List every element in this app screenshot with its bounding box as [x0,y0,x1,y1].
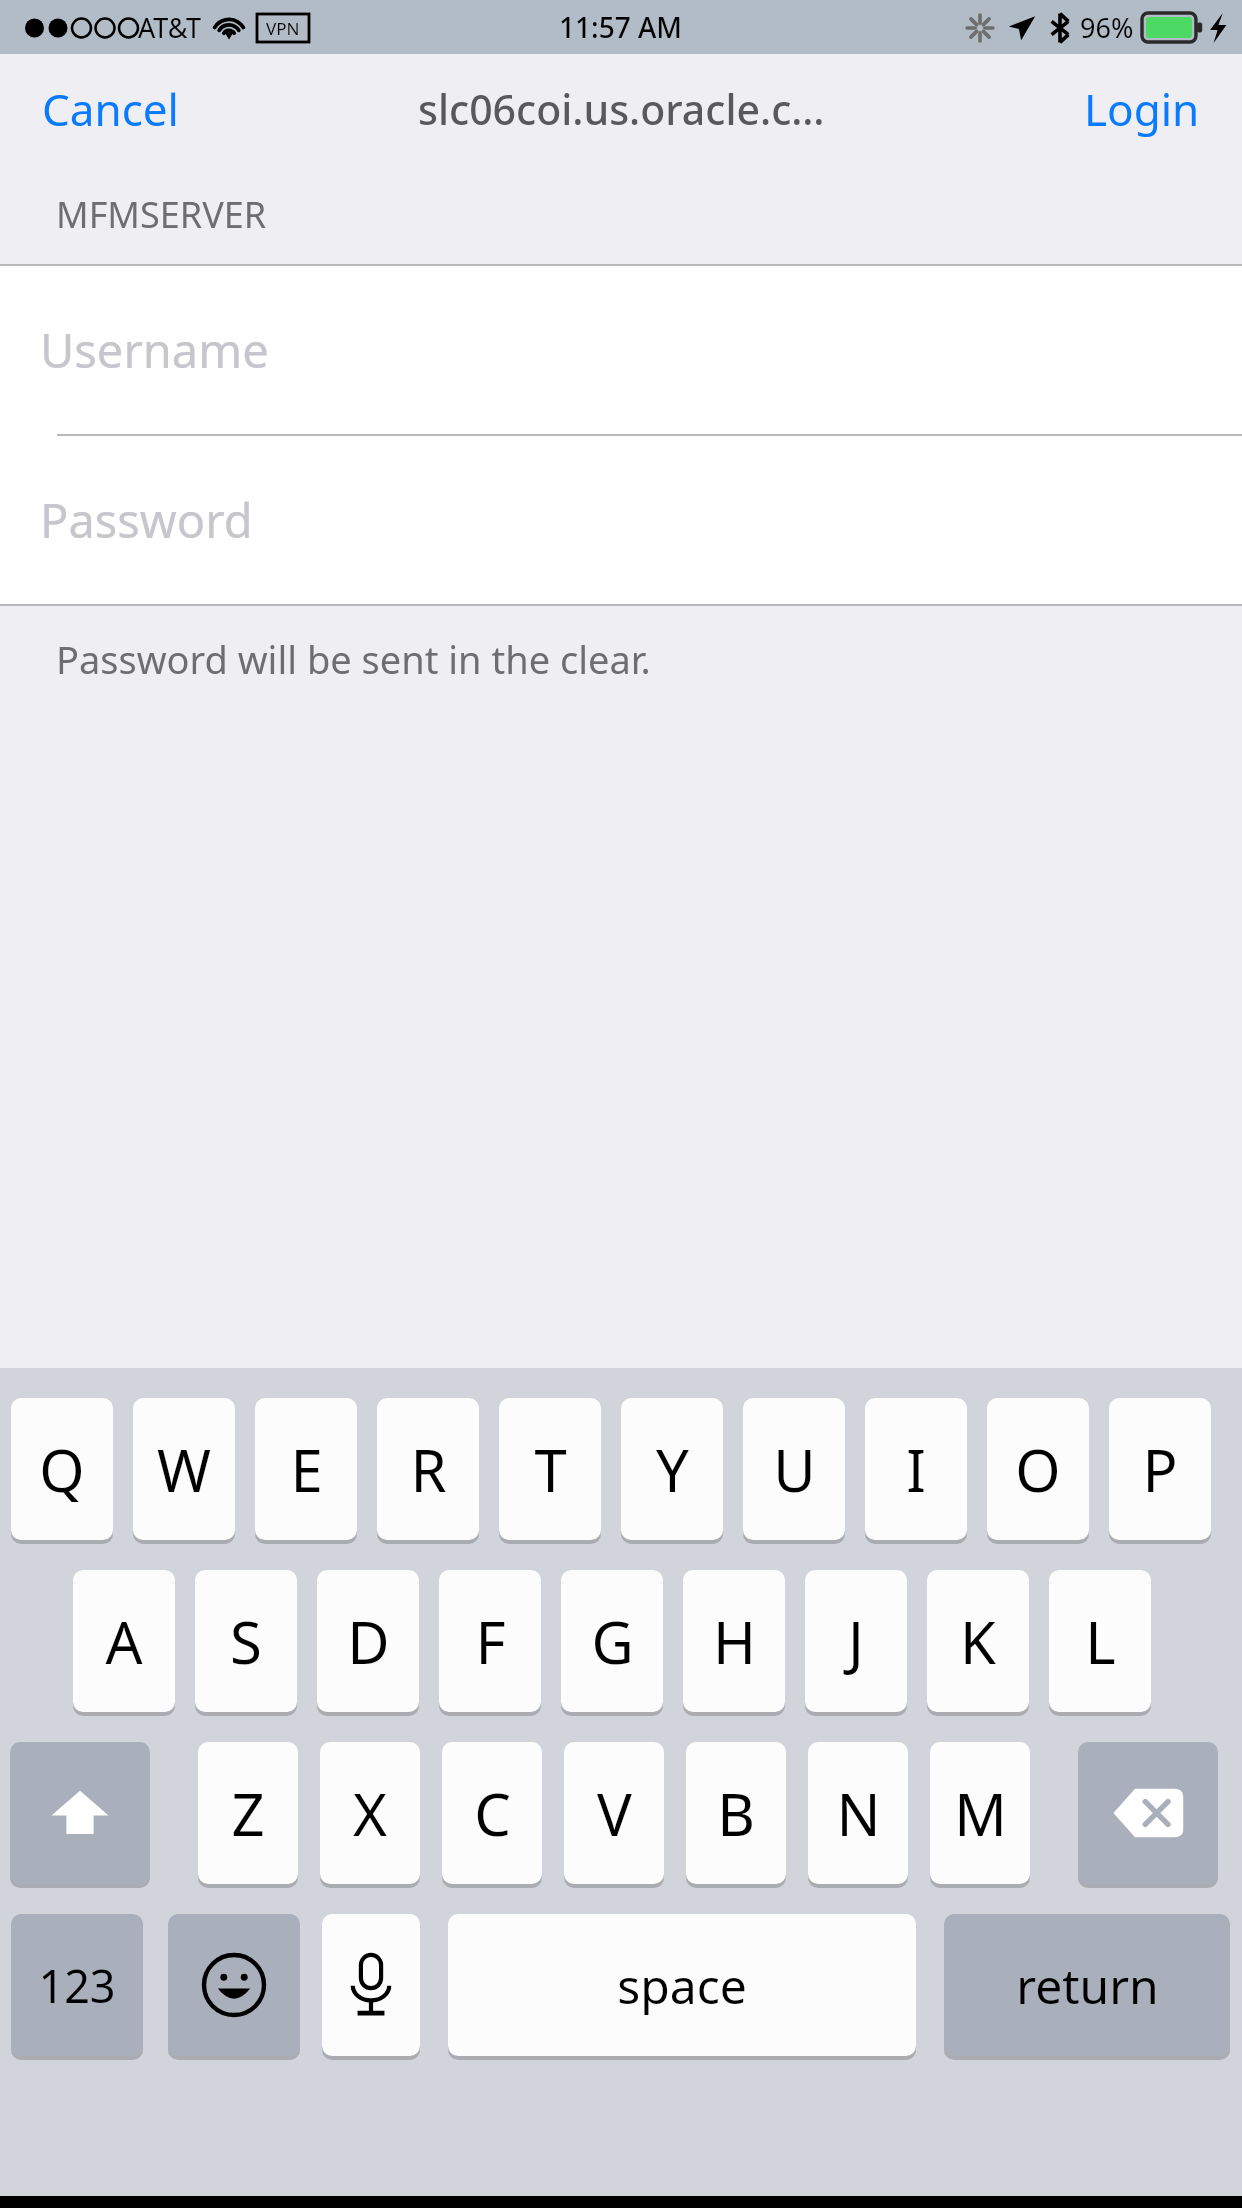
button[interactable]: return [944,1914,1230,2056]
button[interactable]: Z [198,1742,298,1884]
staticText: Z [231,1774,265,1853]
staticText: Username [40,318,269,382]
button[interactable]: F [439,1570,541,1712]
staticText: M [954,1774,1007,1853]
button[interactable]: D [317,1570,419,1712]
staticText: return [1016,1953,1159,2018]
staticText: V [597,1774,632,1853]
staticText: F [475,1602,506,1681]
staticText: 123 [38,1955,116,2016]
button[interactable]: N [808,1742,908,1884]
button[interactable]: W [133,1398,235,1540]
staticText: P [1142,1430,1178,1509]
button[interactable]: Login [1068,67,1216,151]
button[interactable]: A [73,1570,175,1712]
button[interactable]: S [195,1570,297,1712]
button[interactable]: Q [11,1398,113,1540]
staticText: T [534,1430,567,1509]
button[interactable]: Username [0,266,1242,434]
button[interactable]: Shift [10,1742,150,1884]
button[interactable]: 123 [11,1914,143,2056]
staticText: Password [40,488,253,552]
button[interactable]: L [1049,1570,1151,1712]
button[interactable]: E [255,1398,357,1540]
button[interactable]: Password [0,436,1242,604]
button[interactable]: space [448,1914,916,2056]
staticText: Login [1084,79,1200,139]
button[interactable]: C [442,1742,542,1884]
staticText: G [591,1602,634,1681]
staticText: Password will be sent in the clear. [56,633,651,685]
button[interactable]: Cancel [26,67,195,151]
staticText: X [353,1774,387,1853]
button[interactable]: Backspace [1078,1742,1218,1884]
staticText: space [617,1953,747,2018]
button[interactable]: Y [621,1398,723,1540]
staticText: VPN [266,17,300,40]
staticText: I [906,1430,926,1509]
button[interactable]: X [320,1742,420,1884]
staticText: U [773,1430,816,1509]
staticText: O [1015,1430,1061,1509]
button[interactable]: K [927,1570,1029,1712]
button[interactable]: V [564,1742,664,1884]
button[interactable]: B [686,1742,786,1884]
staticText: S [230,1602,262,1681]
staticText: J [848,1602,864,1681]
staticText: slc06coi.us.oracle.c… [418,81,825,137]
staticText: R [410,1430,447,1509]
staticText: Cancel [42,79,179,139]
button[interactable]: G [561,1570,663,1712]
staticText: Y [656,1430,689,1509]
button[interactable]: R [377,1398,479,1540]
button[interactable]: I [865,1398,967,1540]
staticText: K [960,1602,996,1681]
staticText: AT&T [138,9,201,46]
button[interactable]: P [1109,1398,1211,1540]
button[interactable]: H [683,1570,785,1712]
button[interactable]: O [987,1398,1089,1540]
button[interactable]: U [743,1398,845,1540]
staticText: B [717,1774,755,1853]
staticText: 11:57 AM [559,8,683,46]
staticText: L [1085,1602,1116,1681]
staticText: D [347,1602,390,1681]
staticText: H [713,1602,756,1681]
staticText: Q [39,1430,85,1509]
staticText: A [105,1602,143,1681]
staticText: E [290,1430,323,1509]
staticText: N [836,1774,881,1853]
button[interactable]: T [499,1398,601,1540]
staticText: C [474,1774,511,1853]
button[interactable]: Emoji [168,1914,300,2056]
staticText: 96% [1080,9,1134,46]
button[interactable]: Dictation [322,1914,420,2056]
button[interactable]: M [930,1742,1030,1884]
staticText: MFMSERVER [56,190,267,239]
button[interactable]: J [805,1570,907,1712]
staticText: W [157,1430,211,1509]
